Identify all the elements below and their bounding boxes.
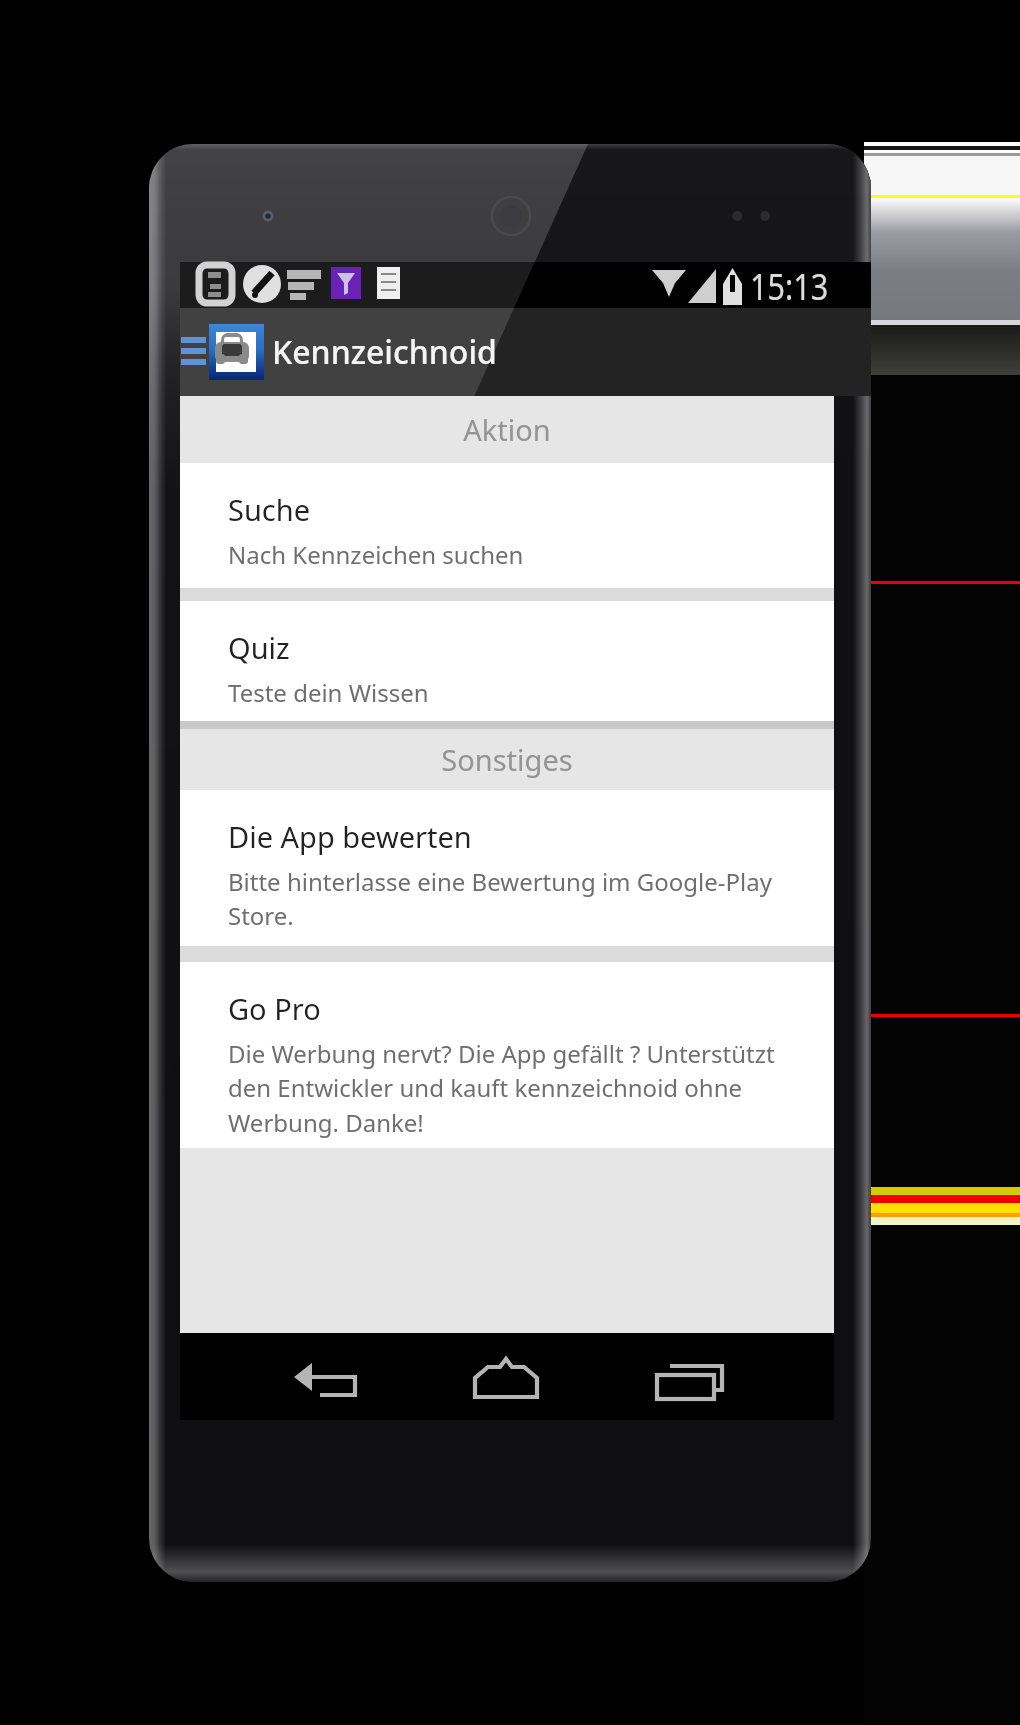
staticText: Sonstiges xyxy=(441,740,573,779)
button[interactable]: Die App bewerten xyxy=(180,790,834,946)
staticText: Go Pro xyxy=(228,989,321,1028)
button[interactable]: Home xyxy=(436,1333,581,1420)
button[interactable]: Go Pro xyxy=(180,962,834,1148)
staticText: Teste dein Wissen xyxy=(228,676,429,709)
staticText: Nach Kennzeichen suchen xyxy=(228,538,524,571)
button[interactable]: Open navigation drawer xyxy=(167,324,219,378)
button[interactable]: Suche xyxy=(180,463,834,588)
staticText: Suche xyxy=(228,490,311,529)
staticText: Quiz xyxy=(228,628,290,667)
staticText: Aktion xyxy=(463,410,551,449)
staticText: Die Werbung nervt? Die App gefällt ? Unt… xyxy=(228,1037,806,1140)
staticText: 15:13 xyxy=(750,262,829,308)
button[interactable]: Back xyxy=(258,1333,403,1420)
button[interactable]: Quiz xyxy=(180,601,834,721)
staticText: Bitte hinterlasse eine Bewertung im Goog… xyxy=(228,865,806,933)
button[interactable]: Recent apps xyxy=(620,1333,765,1420)
staticText: Kennzeichnoid xyxy=(272,330,497,374)
staticText: Die App bewerten xyxy=(228,817,472,856)
